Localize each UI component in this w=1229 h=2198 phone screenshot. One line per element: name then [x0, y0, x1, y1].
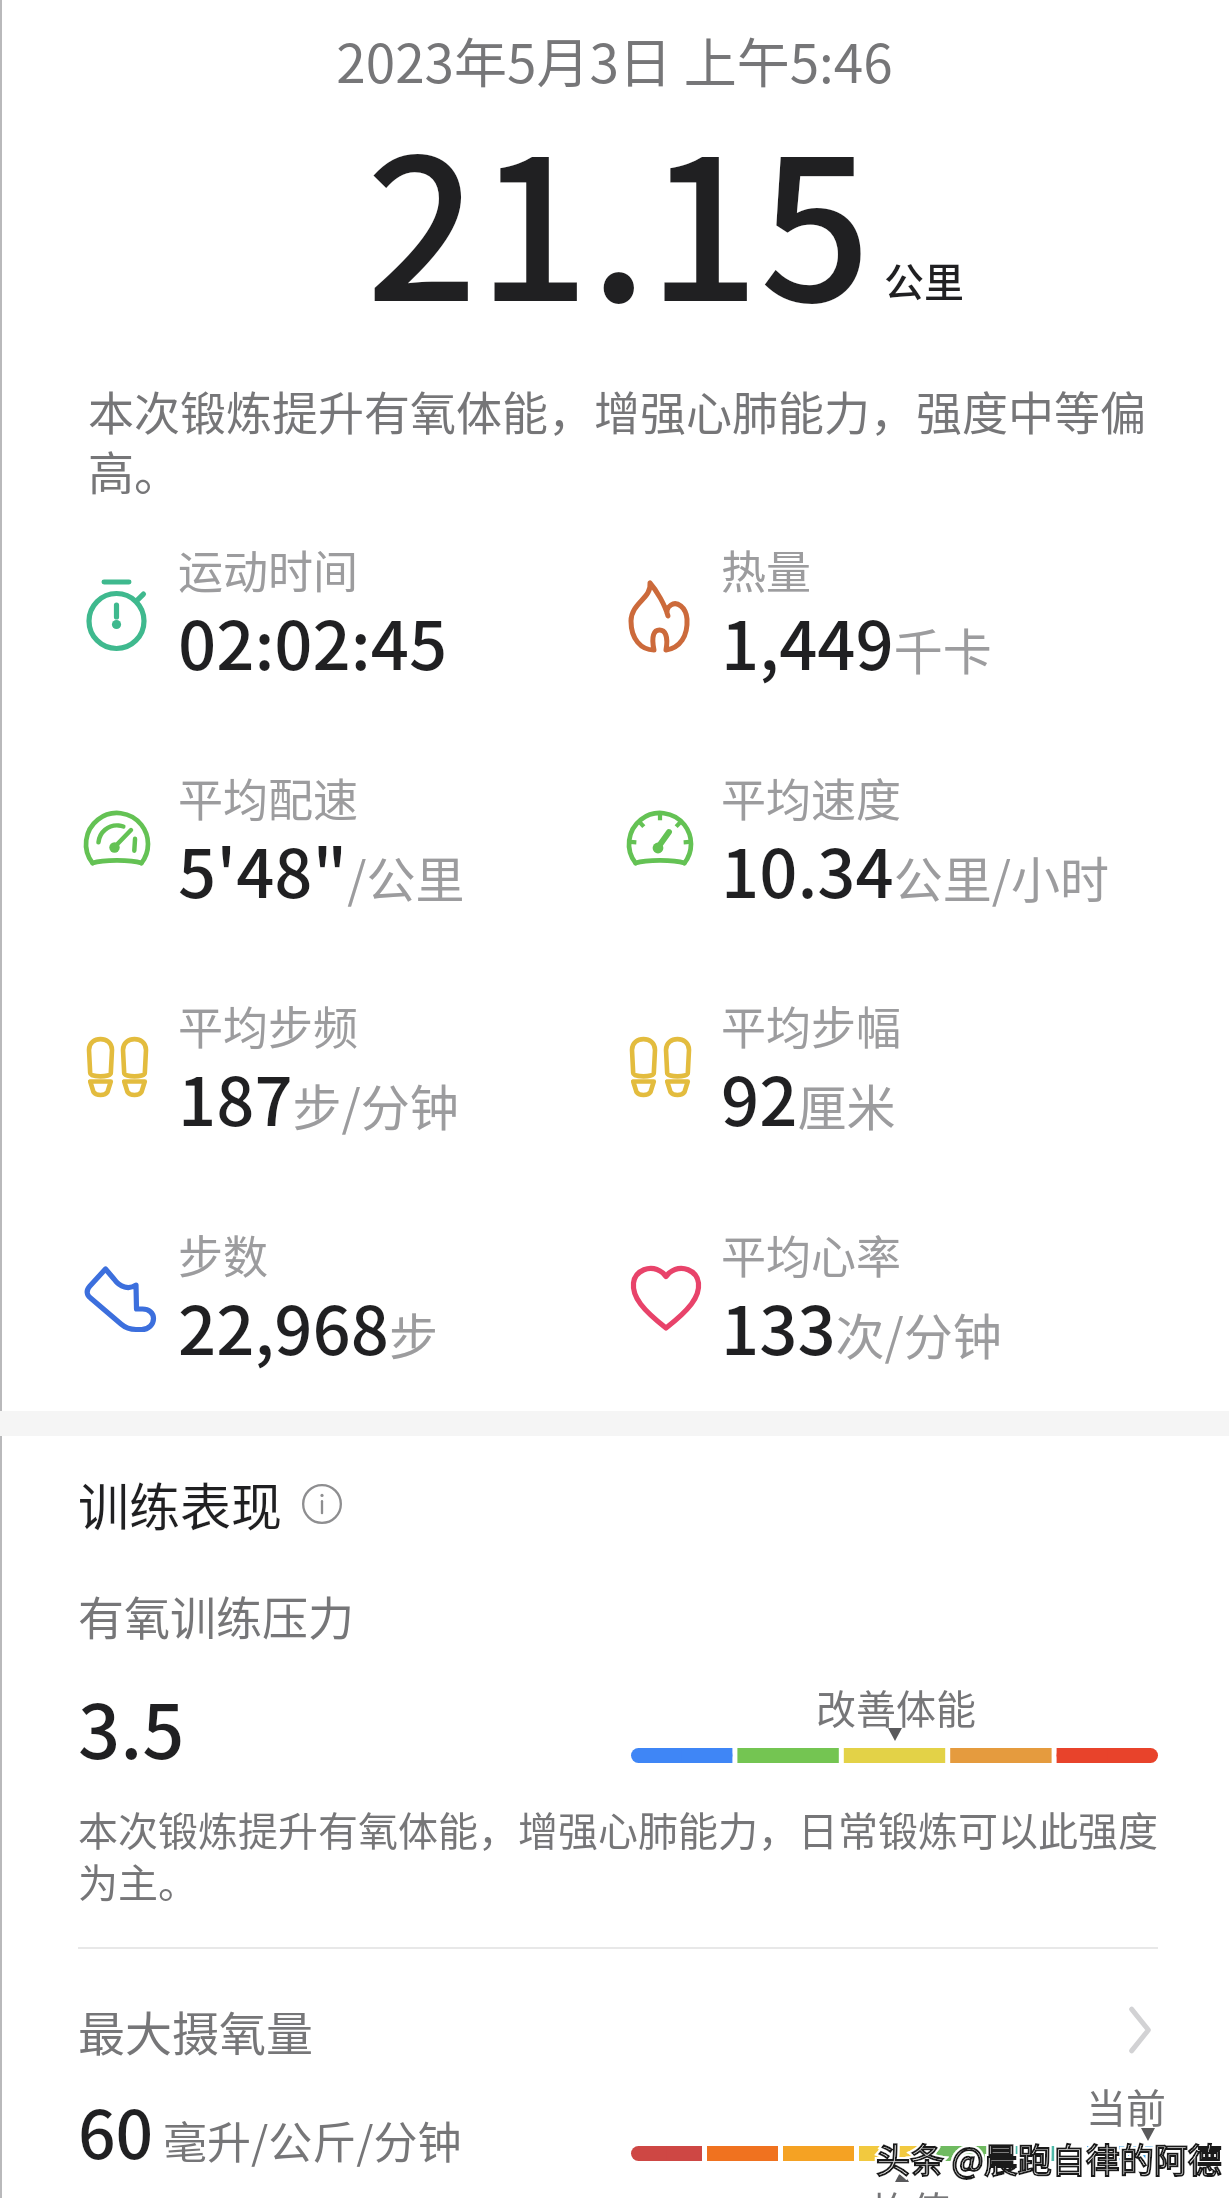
- staticText: 最大摄氧量: [78, 1996, 313, 2064]
- staticText: 2023年5月3日 上午5:46: [0, 22, 1229, 99]
- button[interactable]: 步数: [88, 1222, 608, 1412]
- button[interactable]: 平均速度: [631, 765, 1151, 955]
- button[interactable]: 平均步频: [88, 993, 608, 1183]
- staticText: 公里: [884, 251, 964, 309]
- staticText: 21.15: [366, 74, 872, 358]
- staticText: 92厘米: [721, 1048, 896, 1145]
- staticText: 5'48"/公里: [178, 820, 465, 917]
- staticText: 平均步频: [178, 993, 359, 1058]
- staticText: 60 毫升/公斤/分钟: [78, 2082, 462, 2178]
- staticText: 步数: [178, 1222, 269, 1287]
- staticText: 平均步幅: [721, 993, 902, 1058]
- staticText: 10.34公里/小时: [721, 820, 1109, 917]
- button[interactable]: 平均步幅: [631, 993, 1151, 1183]
- button[interactable]: 平均配速: [88, 765, 608, 955]
- staticText: 187步/分钟: [178, 1048, 459, 1145]
- button[interactable]: 最大摄氧量: [78, 1996, 1155, 2064]
- button[interactable]: 运动时间: [88, 537, 608, 727]
- staticText: 平均配速: [178, 765, 359, 830]
- staticText: 有氧训练压力: [78, 1582, 354, 1649]
- staticText: 平均速度: [721, 765, 902, 830]
- staticText: 运动时间: [178, 537, 359, 602]
- staticText: 训练表现: [78, 1467, 283, 1541]
- staticText: 133次/分钟: [721, 1277, 1002, 1374]
- staticText: 本次锻炼提升有氧体能，增强心肺能力，日常锻炼可以此强度为主。: [78, 1800, 1168, 1909]
- staticText: 本次锻炼提升有氧体能，增强心肺能力，强度中等偏高。: [88, 377, 1166, 503]
- staticText: 22,968步: [178, 1277, 438, 1374]
- staticText: 平均心率: [721, 1222, 902, 1287]
- staticText: 头条 @晨跑自律的阿德: [876, 2134, 1222, 2183]
- other: 查看详情: [1125, 2006, 1155, 2054]
- button[interactable]: 平均心率: [631, 1222, 1151, 1412]
- staticText: 头条 @晨跑自律的阿德: [876, 2134, 1222, 2183]
- staticText: 改善体能: [816, 1678, 976, 1736]
- button[interactable]: 说明: [302, 1484, 342, 1524]
- button[interactable]: 热量: [631, 537, 1151, 727]
- staticText: 1,449千卡: [721, 592, 992, 689]
- button[interactable]: 训练表现: [78, 1467, 342, 1541]
- staticText: 当前: [1086, 2077, 1166, 2135]
- staticText: 均值: [871, 2180, 951, 2198]
- staticText: 02:02:45: [178, 592, 448, 689]
- staticText: 3.5: [78, 1673, 185, 1780]
- staticText: 热量: [721, 537, 812, 602]
